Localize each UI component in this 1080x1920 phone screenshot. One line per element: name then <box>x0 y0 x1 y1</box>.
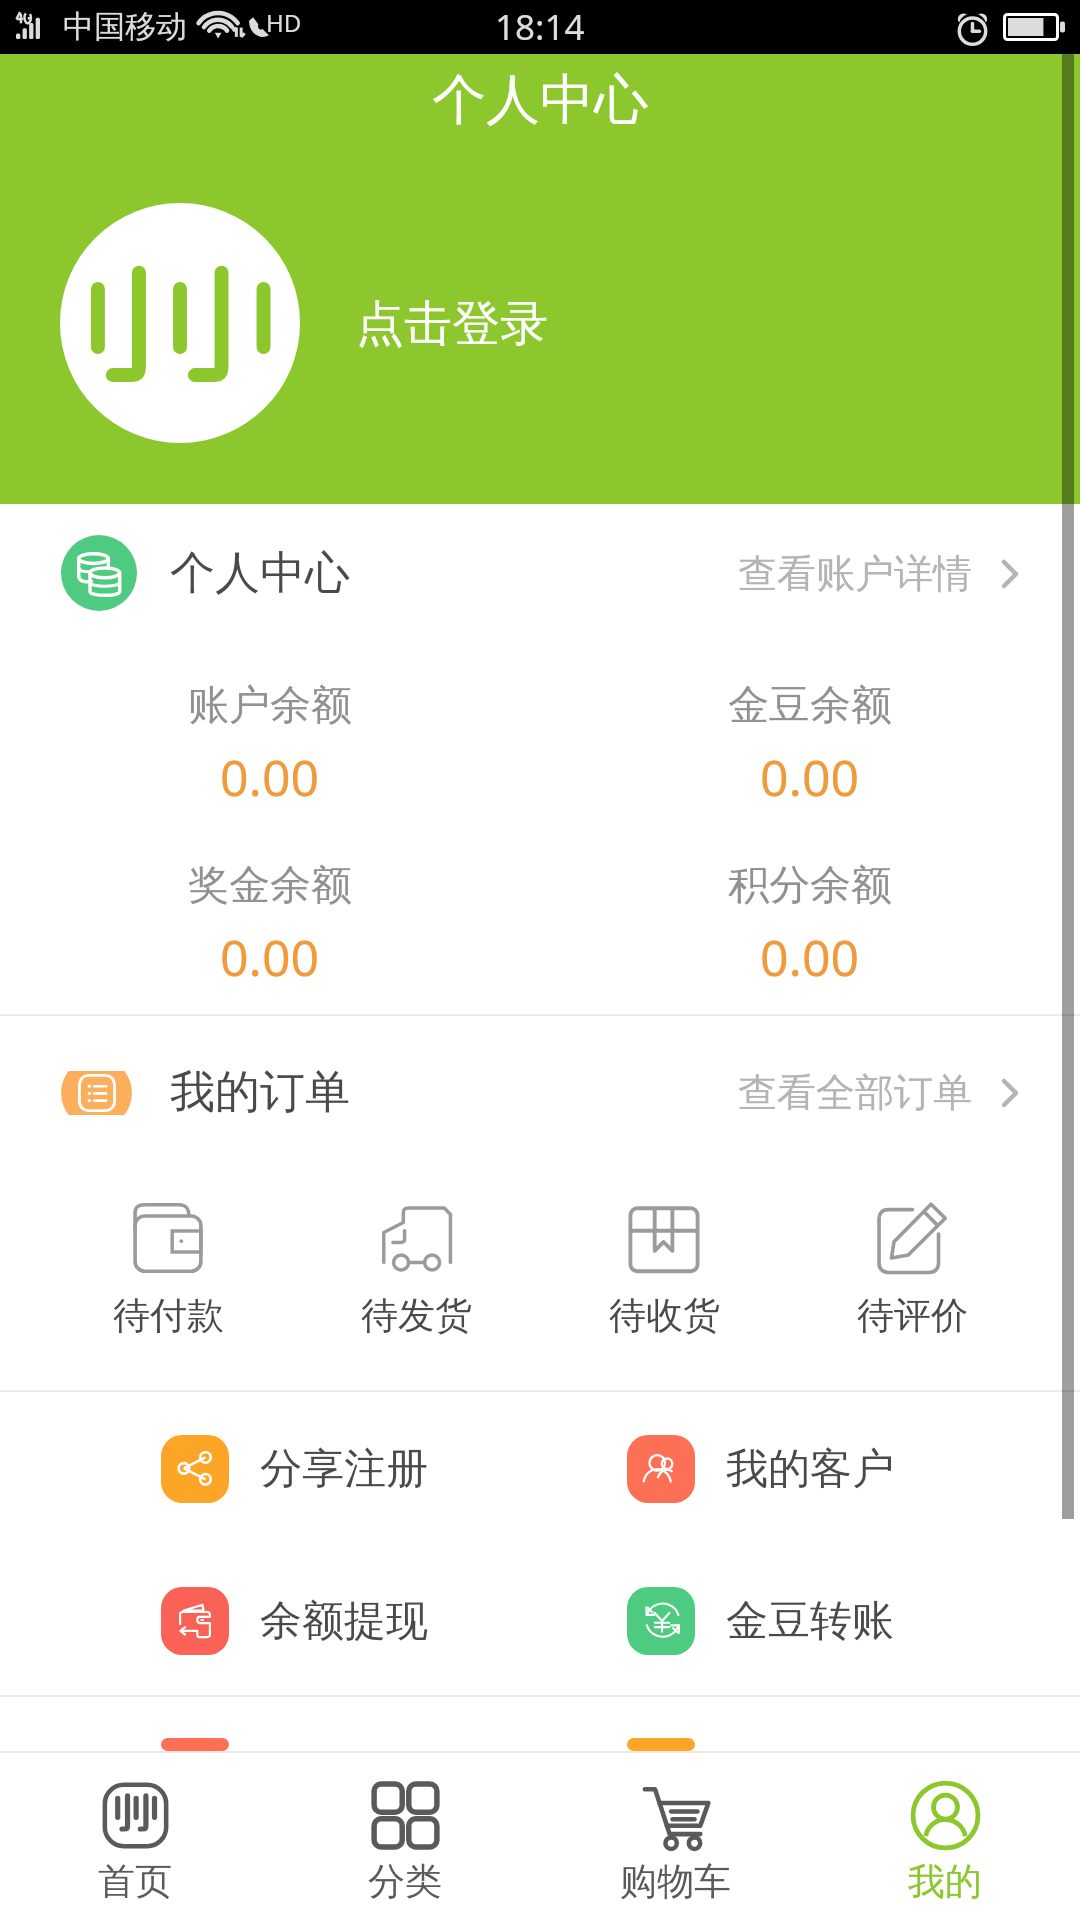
staticText: 个人中心 <box>170 545 350 602</box>
staticText: 奖金余额 <box>188 860 352 912</box>
staticText: 分享注册 <box>260 1443 428 1496</box>
button[interactable]: 首页 <box>0 1753 270 1905</box>
staticText: 0.00 <box>220 743 320 811</box>
staticText: 积分余额 <box>728 860 892 912</box>
staticText: HD <box>266 6 302 39</box>
button[interactable]: 分享注册 <box>0 1435 540 1503</box>
staticText: 查看账户详情 <box>738 549 972 598</box>
staticText: 我的客户 <box>726 1443 894 1496</box>
button[interactable]: 奖金余额 <box>0 860 540 991</box>
button[interactable]: 分类 <box>270 1753 540 1905</box>
staticText: 金豆转账 <box>726 1595 894 1648</box>
button[interactable]: 余额提现 <box>0 1587 540 1655</box>
staticText: 18:14 <box>495 3 585 51</box>
staticText: 我的订单 <box>170 1064 350 1121</box>
button[interactable]: 金豆转账 <box>540 1587 1080 1655</box>
button[interactable]: 积分余额 <box>540 860 1080 991</box>
button[interactable]: 购物车 <box>540 1753 810 1905</box>
staticText: 购物车 <box>620 1858 731 1905</box>
staticText: 我的 <box>908 1858 982 1905</box>
staticText: 首页 <box>98 1858 172 1905</box>
staticText: 待付款 <box>113 1292 224 1339</box>
button[interactable]: 我的 <box>810 1753 1080 1905</box>
button[interactable]: 待发货 <box>292 1203 540 1339</box>
staticText: 0.00 <box>220 923 320 991</box>
button[interactable]: 点击登录 <box>356 294 548 354</box>
staticText: 中国移动 <box>63 7 187 46</box>
staticText: 待发货 <box>361 1292 472 1339</box>
button[interactable]: 待付款 <box>44 1203 292 1339</box>
button[interactable]: 我的订单 <box>0 1016 1080 1169</box>
staticText: 待评价 <box>857 1292 968 1339</box>
staticText: 0.00 <box>760 743 860 811</box>
staticText: 个人中心 <box>432 66 648 134</box>
button[interactable]: 待评价 <box>788 1203 1036 1339</box>
button[interactable]: 我的客户 <box>540 1435 1080 1503</box>
button[interactable]: 个人中心 <box>0 504 1080 642</box>
staticText: 账户余额 <box>188 680 352 732</box>
button[interactable]: Avatar <box>60 203 300 443</box>
staticText: 查看全部订单 <box>738 1068 972 1117</box>
button[interactable]: 待收货 <box>540 1203 788 1339</box>
button[interactable]: 账户余额 <box>0 680 540 811</box>
staticText: 分类 <box>368 1858 442 1905</box>
staticText: 0.00 <box>760 923 860 991</box>
staticText: 待收货 <box>609 1292 720 1339</box>
button[interactable]: 金豆余额 <box>540 680 1080 811</box>
staticText: 余额提现 <box>260 1595 428 1648</box>
staticText: 金豆余额 <box>728 680 892 732</box>
